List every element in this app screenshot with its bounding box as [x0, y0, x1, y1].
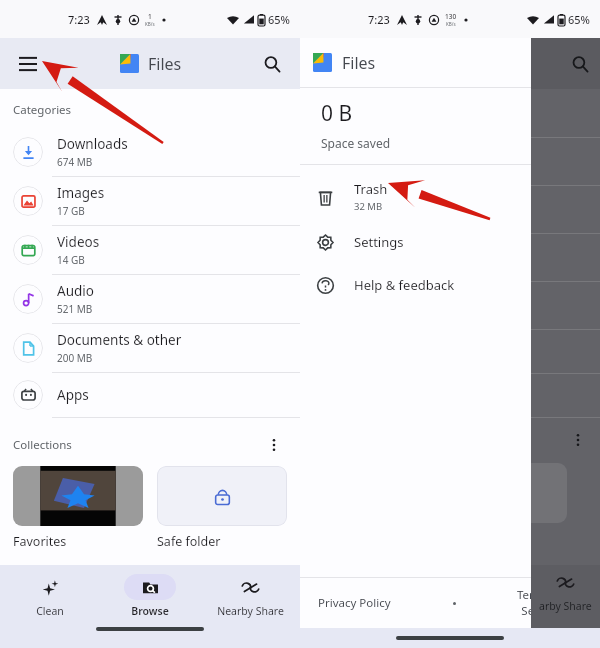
staticText: Categories	[13, 102, 72, 118]
staticText: Trash	[354, 180, 388, 198]
button[interactable]: Clean	[0, 574, 100, 618]
button[interactable]: Search	[254, 46, 290, 82]
staticText: 130	[445, 12, 457, 21]
staticText: Videos	[57, 233, 100, 251]
button[interactable]: Apps	[0, 373, 300, 418]
button[interactable]: Settings	[300, 220, 600, 263]
button[interactable]: Open navigation drawer	[8, 44, 48, 84]
staticText: Audio	[57, 282, 94, 300]
button[interactable]: Browse	[100, 574, 200, 618]
staticText: 65%	[568, 12, 590, 27]
button[interactable]: Favorites	[13, 466, 143, 550]
staticText: KB/s	[145, 21, 155, 27]
staticText: Downloads	[57, 135, 128, 153]
staticText: Images	[57, 184, 105, 202]
staticText: Apps	[57, 386, 89, 404]
staticText: 7:23	[68, 12, 90, 27]
staticText: Settings	[354, 233, 404, 251]
staticText: Safe folder	[157, 533, 221, 550]
staticText: KB/s	[446, 21, 456, 27]
staticText: Files	[148, 53, 182, 75]
staticText: Space saved	[321, 135, 391, 151]
staticText: 674 MB	[57, 155, 93, 169]
staticText: Browse	[131, 604, 169, 618]
staticText: 521 MB	[57, 302, 93, 316]
staticText: Files	[342, 52, 376, 74]
staticText: Clean	[36, 604, 64, 618]
staticText: 17 GB	[57, 204, 85, 218]
staticText: Help & feedback	[354, 276, 455, 294]
staticText: 14 GB	[57, 253, 85, 267]
button[interactable]: Downloads	[0, 128, 300, 177]
button[interactable]: Terms of Service	[517, 587, 564, 619]
staticText: Collections	[13, 437, 72, 453]
button[interactable]: Audio	[0, 275, 300, 324]
staticText: Favorites	[13, 533, 67, 550]
staticText: 65%	[268, 12, 290, 27]
button[interactable]: Images	[0, 177, 300, 226]
button[interactable]: More options	[261, 432, 287, 458]
staticText: 0 B	[321, 99, 353, 128]
button[interactable]: Nearby Share	[200, 574, 300, 618]
button[interactable]: Help & feedback	[300, 263, 600, 306]
staticText: Documents & other	[57, 331, 182, 349]
button[interactable]: Safe folder	[157, 466, 287, 550]
button[interactable]: Documents & other	[0, 324, 300, 373]
staticText: 32 MB	[354, 200, 383, 213]
staticText: 200 MB	[57, 351, 93, 365]
staticText: Nearby Share	[217, 604, 284, 618]
staticText: arby Share	[539, 599, 592, 613]
button[interactable]: Trash	[300, 173, 600, 220]
button[interactable]: Privacy Policy	[318, 595, 391, 611]
button[interactable]: Videos	[0, 226, 300, 275]
staticText: 1	[148, 12, 152, 21]
staticText: 7:23	[368, 12, 390, 27]
